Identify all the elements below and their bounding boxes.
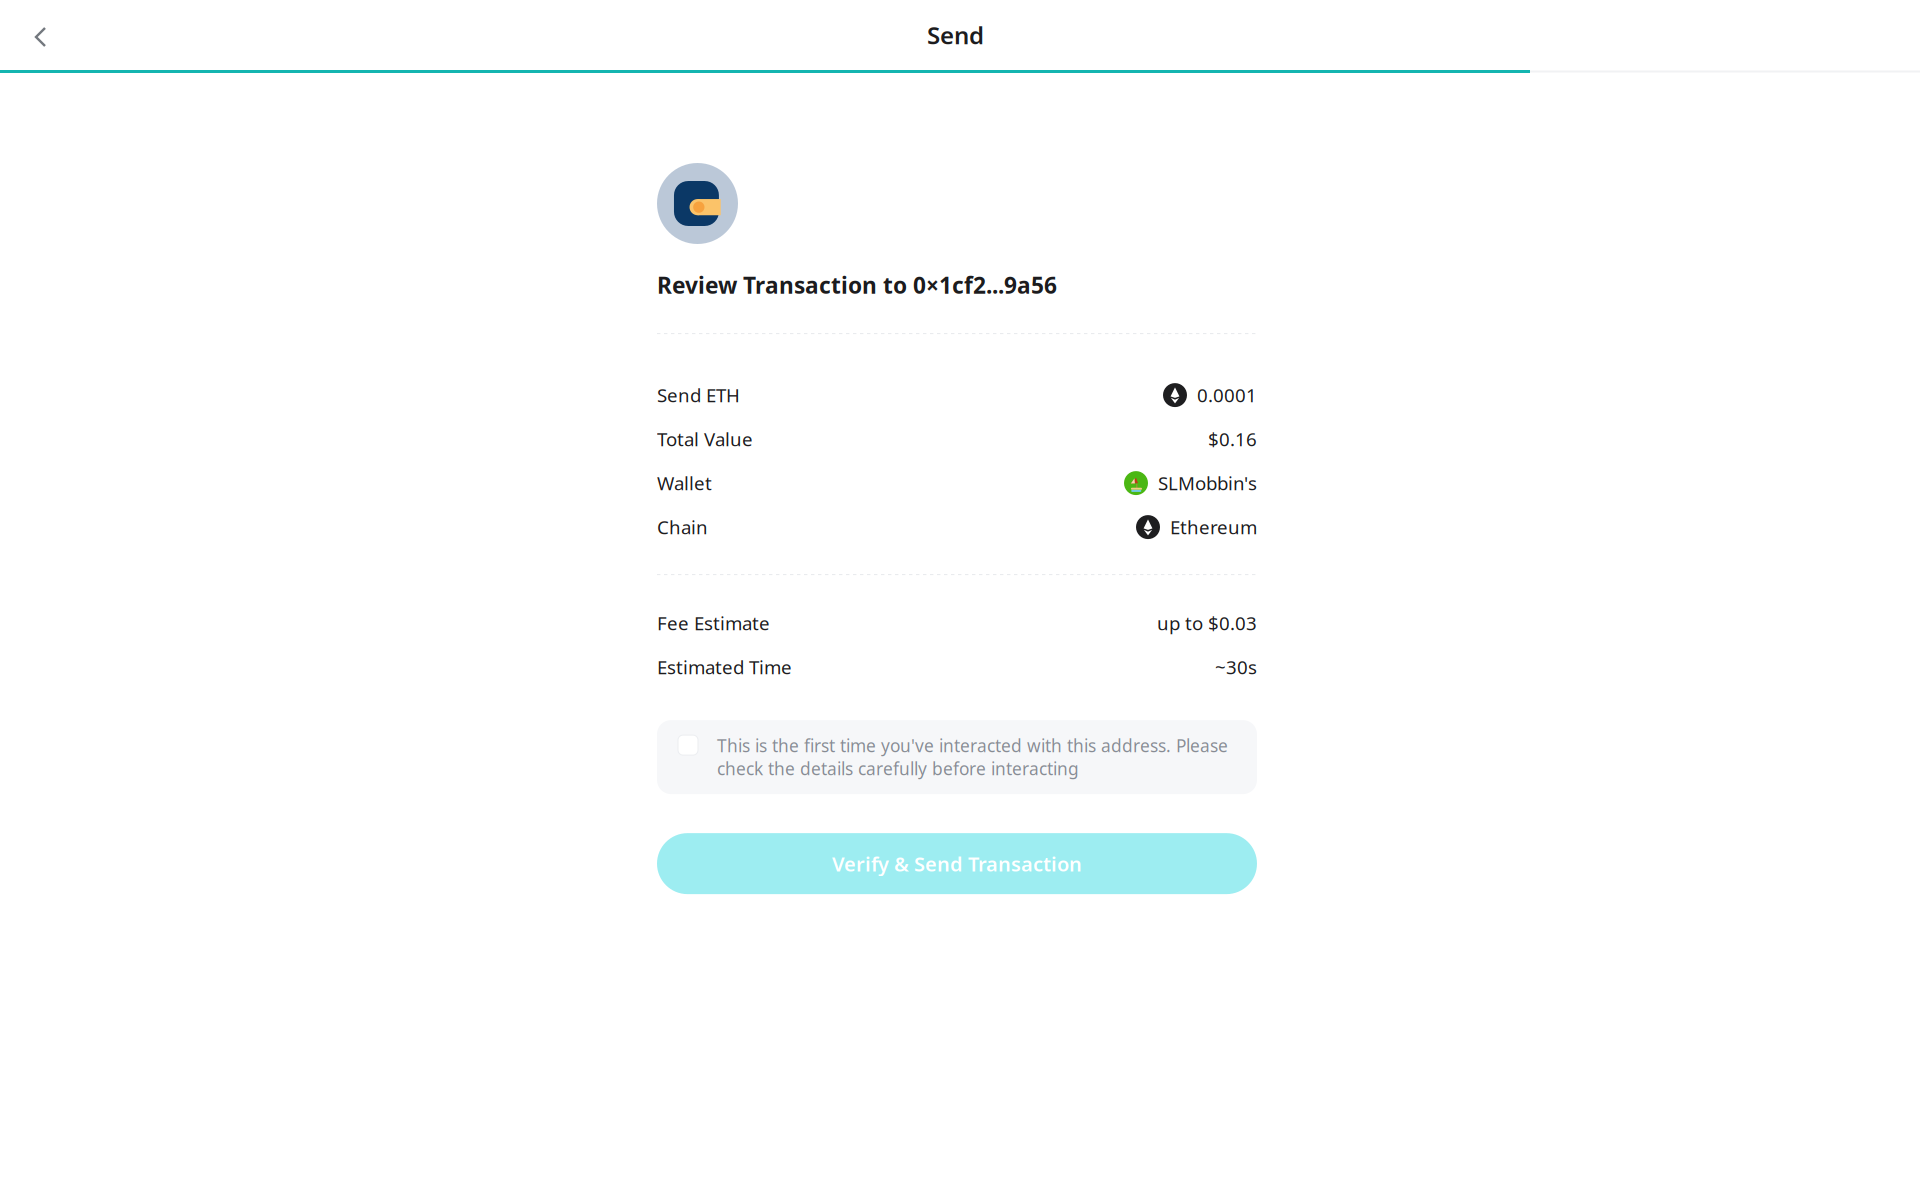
button[interactable]: Back: [0, 0, 71, 70]
staticText: Send: [927, 19, 984, 51]
staticText: SLMobbin's: [1158, 471, 1257, 495]
staticText: Estimated Time: [657, 655, 792, 679]
staticText: Send ETH: [657, 383, 740, 407]
staticText: This is the first time you've interacted…: [717, 734, 1228, 780]
button[interactable]: Verify & Send Transaction: [657, 833, 1257, 894]
staticText: 0.0001: [1197, 383, 1257, 407]
staticText: $0.16: [1208, 427, 1257, 451]
button[interactable]: This is the first time you've interacted…: [657, 720, 1257, 794]
staticText: Verify & Send Transaction: [832, 850, 1082, 877]
staticText: Review Transaction to 0×1cf2...9a56: [657, 270, 1057, 300]
staticText: Ethereum: [1170, 515, 1257, 539]
staticText: Wallet: [657, 471, 712, 495]
staticText: Total Value: [657, 427, 753, 451]
staticText: ~30s: [1215, 655, 1257, 679]
staticText: Fee Estimate: [657, 611, 770, 635]
staticText: Chain: [657, 515, 708, 539]
staticText: up to $0.03: [1157, 611, 1257, 635]
